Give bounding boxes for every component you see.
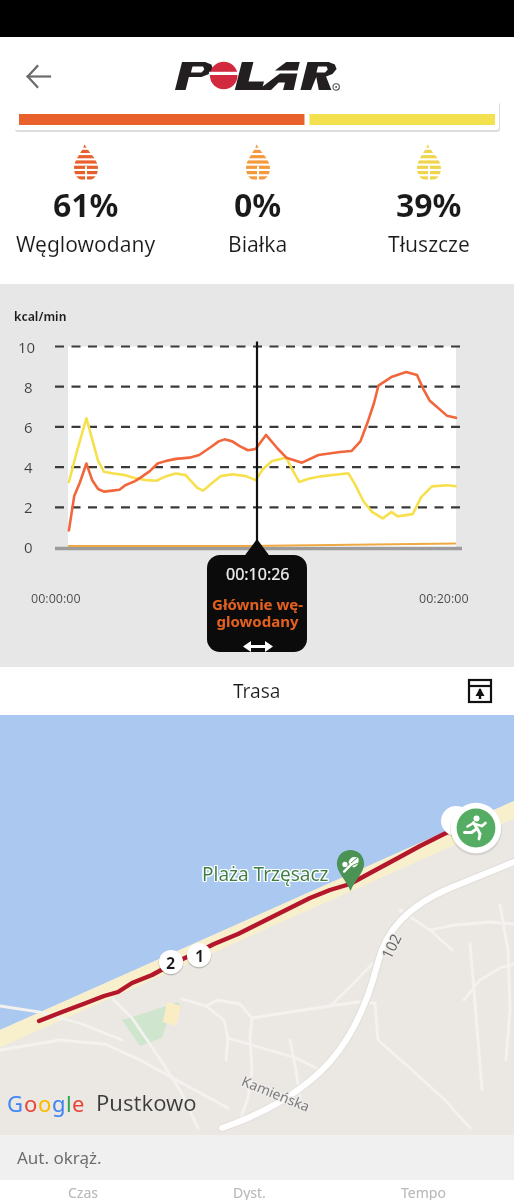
staticText: 102	[377, 931, 406, 963]
staticText: 102	[376, 929, 405, 961]
staticText: 102	[378, 929, 407, 962]
staticText: o	[24, 1088, 38, 1118]
staticText: Plaża Trzęsacz	[202, 862, 329, 888]
staticText: 0	[24, 537, 33, 557]
staticText: Plaża Trzęsacz	[201, 861, 328, 887]
staticText: 0%	[234, 183, 282, 227]
button[interactable]: Fullscreen map	[460, 671, 500, 711]
staticText: Plaża Trzęsacz	[201, 862, 328, 888]
staticText: Kamieńska	[238, 1071, 312, 1115]
staticText: 8	[24, 377, 33, 397]
staticText: g	[52, 1088, 66, 1118]
staticText: Kamieńska	[240, 1072, 314, 1116]
staticText: 00:10:26	[226, 563, 290, 585]
staticText: 10	[18, 337, 36, 357]
staticText: 00:00:00	[31, 590, 81, 607]
staticText: 2	[24, 497, 33, 517]
staticText: Aut. okrąż.	[17, 1146, 102, 1169]
staticText: G	[7, 1088, 24, 1118]
staticText: 39%	[396, 183, 462, 227]
staticText: Kamieńska	[240, 1072, 313, 1117]
staticText: Kamieńska	[239, 1071, 313, 1116]
staticText: Plaża Trzęsacz	[203, 861, 330, 887]
staticText: Plaża Trzęsacz	[202, 861, 329, 887]
staticText: e	[72, 1088, 85, 1118]
staticText: kcal/min	[14, 308, 67, 324]
staticText: 4	[24, 457, 33, 477]
staticText: Trasa	[233, 678, 281, 704]
staticText: Białka	[228, 230, 288, 259]
staticText: Kamieńska	[238, 1070, 312, 1114]
staticText: Dyst.	[233, 1183, 266, 1200]
button[interactable]: 39%	[388, 144, 470, 259]
staticText: Kamieńska	[239, 1072, 313, 1117]
staticText: 102	[375, 930, 404, 962]
staticText: Węglowodany	[16, 230, 156, 259]
button[interactable]: Aut. okrąż.	[0, 1135, 514, 1180]
button[interactable]: Back	[16, 54, 60, 98]
staticText: 2	[166, 952, 176, 974]
staticText: Głównie wę- glowodany	[212, 594, 303, 632]
staticText: o	[38, 1088, 52, 1118]
staticText: Tempo	[401, 1183, 446, 1200]
staticText: Plaża Trzęsacz	[203, 860, 330, 886]
staticText: l	[66, 1088, 72, 1118]
staticText: Tłuszcze	[388, 230, 470, 259]
staticText: Pustkowo	[96, 1087, 197, 1117]
staticText: Plaża Trzęsacz	[201, 860, 328, 886]
staticText: 102	[377, 929, 406, 961]
button[interactable]: 61%	[16, 144, 156, 259]
button[interactable]: 00:10:26	[207, 555, 307, 652]
staticText: Kamieńska	[240, 1071, 314, 1115]
staticText: Kamieńska	[238, 1072, 312, 1116]
staticText: 61%	[53, 183, 119, 227]
staticText: Kamieńska	[239, 1070, 313, 1115]
staticText: 6	[24, 417, 33, 437]
staticText: 102	[377, 930, 407, 962]
staticText: 102	[376, 930, 406, 962]
button[interactable]: Route map	[0, 715, 514, 1135]
staticText: 1	[195, 945, 205, 967]
staticText: Plaża Trzęsacz	[203, 862, 330, 888]
staticText: 102	[376, 931, 405, 963]
staticText: 00:20:00	[419, 590, 469, 607]
staticText: 102	[375, 929, 405, 962]
staticText: Czas	[68, 1183, 98, 1200]
button[interactable]: 0%	[228, 144, 288, 259]
staticText: Plaża Trzęsacz	[202, 860, 329, 886]
